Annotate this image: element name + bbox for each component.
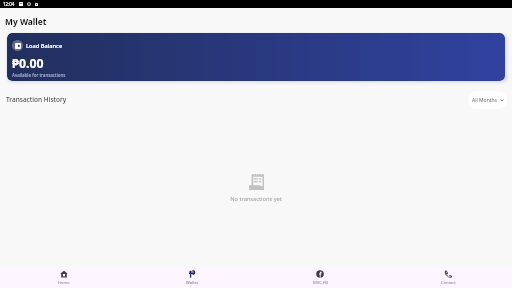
staticText: MVC-FB xyxy=(313,280,328,286)
button[interactable]: Contact xyxy=(384,268,512,288)
button[interactable]: Wallet xyxy=(128,268,256,288)
staticText: 12:04 xyxy=(3,1,15,7)
staticText: Contact xyxy=(441,280,456,286)
staticText: My Wallet xyxy=(5,16,47,27)
staticText: Load Balance xyxy=(26,42,63,50)
button[interactable]: MVC Facebook xyxy=(256,268,384,288)
staticText: Home xyxy=(58,280,70,286)
button[interactable]: All Months xyxy=(468,91,507,109)
staticText: Available for transactions xyxy=(12,72,66,78)
staticText: Wallet xyxy=(186,280,198,286)
button[interactable]: Home xyxy=(0,268,128,288)
staticText: Transaction History xyxy=(6,95,67,104)
staticText: ₱0.00 xyxy=(12,55,44,72)
button[interactable]: Load Balance xyxy=(7,33,505,81)
staticText: No transactions yet xyxy=(230,195,282,203)
staticText: All Months xyxy=(472,97,498,104)
